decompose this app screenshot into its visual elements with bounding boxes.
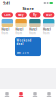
staticText: Cars (4, 13, 10, 17)
button[interactable]: Tab 2 (14, 89, 28, 100)
staticText: Tour (46, 13, 52, 17)
staticText: Fly (33, 13, 37, 17)
button[interactable]: Hotel (15, 19, 27, 35)
button[interactable]: Tab 3 (28, 89, 42, 100)
staticText: Save 25% (17, 51, 29, 54)
staticText: Store (22, 6, 33, 11)
button[interactable]: Hotel (29, 19, 41, 35)
staticText: Weekend deal (17, 39, 32, 46)
button[interactable]: Cars (2, 12, 13, 17)
button[interactable]: Tour (43, 12, 54, 17)
button[interactable]: Tab 1 (0, 89, 14, 100)
staticText: Stay (18, 13, 24, 17)
staticText: Hotel (2, 28, 10, 31)
button[interactable]: Fly (29, 12, 41, 17)
button[interactable]: Hotel (2, 19, 13, 35)
staticText: Hotel (15, 28, 23, 31)
staticText: from (29, 31, 35, 35)
staticText: from (2, 31, 8, 35)
staticText: from (15, 31, 21, 35)
button[interactable]: Tab 4 (42, 89, 56, 100)
button[interactable]: Stay (15, 12, 27, 17)
staticText: from (43, 31, 49, 35)
staticText: 9:41 (3, 0, 10, 6)
staticText: Hotel (29, 28, 37, 31)
staticText: Hotel (43, 28, 51, 31)
button[interactable]: Hotel (43, 19, 54, 35)
button[interactable]: Weekend deal (15, 37, 41, 56)
